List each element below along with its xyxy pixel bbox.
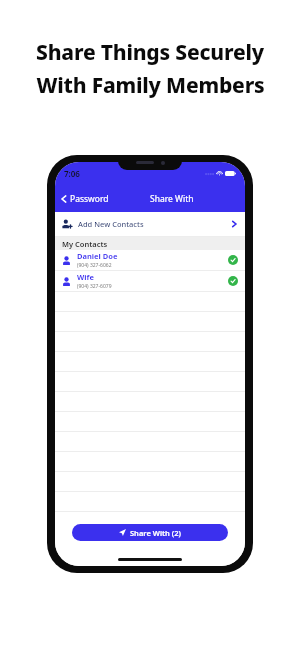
button[interactable]: Wife (55, 271, 245, 291)
button[interactable]: Share With (2) (72, 524, 228, 541)
staticText: (904) 327-6079 (77, 283, 112, 290)
button[interactable]: Add New Contacts (55, 212, 245, 236)
staticText: Share With (150, 193, 194, 205)
button[interactable]: Daniel Doe (55, 250, 245, 270)
other: Selected (228, 276, 238, 286)
staticText: Wife (77, 272, 94, 282)
staticText: With Family Members (36, 71, 265, 100)
staticText: 7:06 (64, 168, 80, 179)
staticText: Daniel Doe (77, 251, 118, 261)
button[interactable]: Password (55, 186, 115, 212)
other: Selected (228, 255, 238, 265)
staticText: Share Things Securely (36, 38, 264, 67)
staticText: (904) 327-6062 (77, 262, 112, 269)
staticText: Password (70, 193, 109, 205)
staticText: Share With (2) (130, 528, 181, 538)
staticText: Add New Contacts (78, 219, 144, 229)
staticText: My Contacts (62, 239, 108, 249)
